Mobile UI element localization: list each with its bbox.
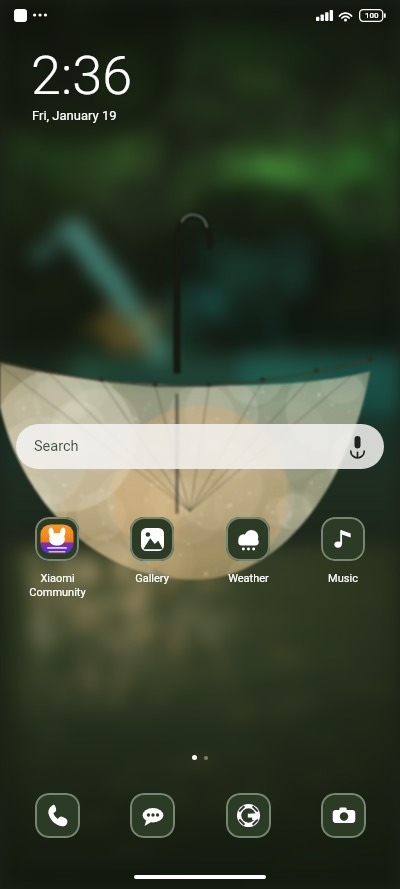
button[interactable]: Phone (12, 793, 102, 838)
staticText: 2:36 (31, 44, 133, 107)
button[interactable]: Browser (203, 793, 293, 838)
staticText: 100 (365, 11, 379, 20)
button[interactable]: Xiaomi Community (12, 517, 102, 598)
button[interactable]: Weather (203, 517, 293, 585)
staticText: Xiaomi Community (29, 572, 86, 598)
button[interactable]: Music (298, 517, 388, 585)
staticText: Weather (228, 572, 269, 585)
button[interactable]: Gallery (107, 517, 197, 585)
staticText: Search (34, 438, 79, 455)
staticText: Gallery (135, 572, 169, 585)
button[interactable]: Search (16, 424, 384, 469)
staticText: Music (328, 572, 358, 585)
button[interactable]: Camera (298, 793, 388, 838)
staticText: Fri, January 19 (32, 108, 117, 123)
button[interactable]: Messages (107, 793, 197, 838)
